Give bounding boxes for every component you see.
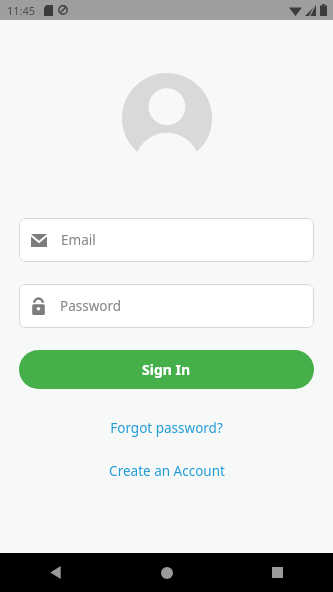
other: Password [31,297,46,315]
button[interactable]: Back [0,553,111,592]
staticText: Sign In [142,360,191,379]
button[interactable]: Recent apps [222,553,333,592]
staticText: 11:45 [7,3,36,18]
button[interactable]: Home [111,553,222,592]
button[interactable]: Forgot password? [0,419,333,437]
button[interactable]: Email [19,218,314,262]
staticText: Email [61,231,96,249]
staticText: Forgot password? [110,419,223,437]
button[interactable]: Create an Account [0,462,333,480]
button[interactable]: Password [19,284,314,328]
staticText: Password [60,297,122,315]
button[interactable]: Sign In [19,350,314,389]
staticText: Create an Account [109,462,225,480]
other: Email [31,234,47,247]
